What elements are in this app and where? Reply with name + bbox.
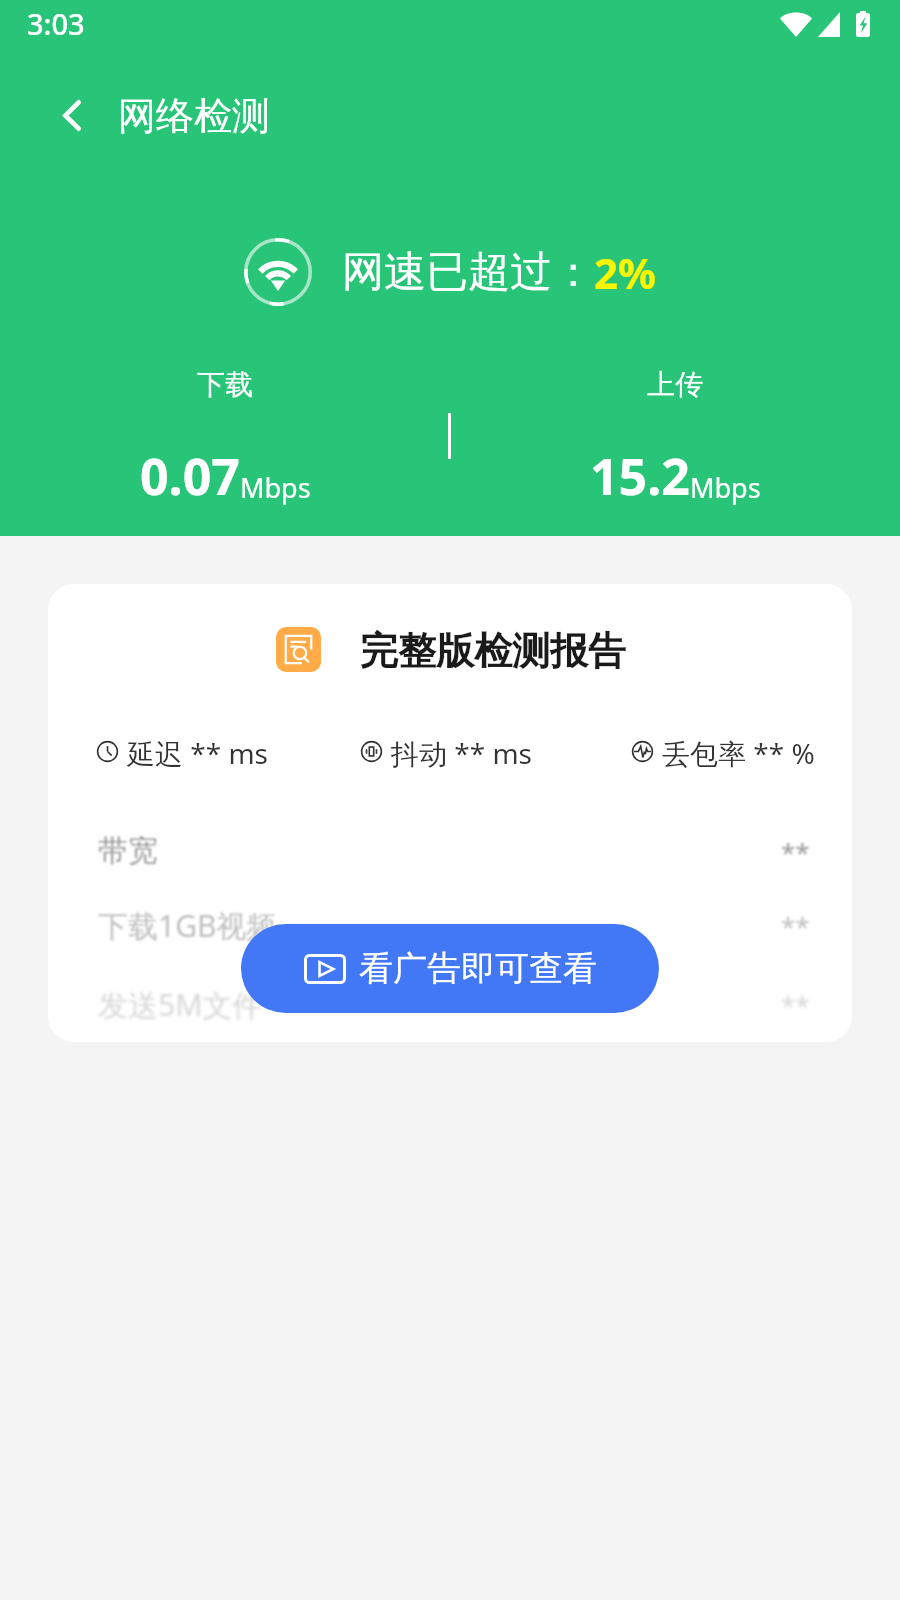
other: Mobile signal	[818, 12, 840, 37]
staticText: 带宽	[98, 832, 158, 870]
staticText: 下载	[197, 367, 253, 402]
staticText: 完整版检测报告	[360, 627, 626, 675]
staticText: 看广告即可查看	[359, 947, 597, 990]
button[interactable]: 下载1GB视频	[48, 905, 852, 946]
staticText: **	[781, 908, 810, 943]
staticText: 发送5M文件	[98, 984, 263, 1025]
staticText: 抖动 ** ms	[391, 734, 533, 768]
staticText: **	[781, 987, 810, 1022]
other: Wi-Fi	[780, 12, 812, 37]
staticText: 网速已超过：	[342, 246, 594, 299]
staticText: 0.07	[140, 442, 240, 510]
staticText: Mbps	[240, 469, 311, 506]
button[interactable]: 看广告即可查看	[241, 924, 659, 1013]
staticText: 丢包率 ** %	[662, 734, 815, 768]
staticText: 网络检测	[118, 92, 270, 140]
button[interactable]: 带宽	[48, 832, 852, 870]
staticText: **	[781, 834, 810, 869]
button[interactable]: Back	[36, 79, 108, 151]
staticText: 2%	[594, 244, 656, 301]
staticText: 延迟 ** ms	[127, 734, 269, 768]
staticText: Mbps	[690, 469, 761, 506]
other: Battery charging	[856, 11, 870, 37]
staticText: 下载1GB视频	[98, 905, 277, 946]
staticText: 上传	[647, 367, 703, 402]
staticText: 3:03	[27, 4, 85, 43]
staticText: 15.2	[590, 442, 690, 510]
button[interactable]: 发送5M文件	[48, 984, 852, 1025]
